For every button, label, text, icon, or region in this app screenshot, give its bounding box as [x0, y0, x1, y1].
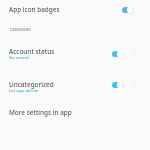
staticText: No sound — [9, 54, 29, 60]
staticText: More settings in app — [9, 108, 72, 117]
staticText: Let app decide — [9, 87, 39, 93]
button[interactable] — [0, 105, 150, 122]
staticText: App icon badges — [9, 5, 60, 14]
staticText: Account status — [9, 47, 55, 56]
staticText: Uncategorized — [9, 80, 54, 89]
button[interactable]: Toggle — [112, 50, 124, 58]
button[interactable]: Toggle — [112, 81, 124, 89]
button[interactable] — [0, 0, 150, 19]
staticText: CATEGORIES — [10, 27, 31, 32]
button[interactable]: Toggle — [122, 6, 134, 14]
button[interactable] — [0, 44, 150, 63]
button[interactable] — [0, 76, 150, 95]
